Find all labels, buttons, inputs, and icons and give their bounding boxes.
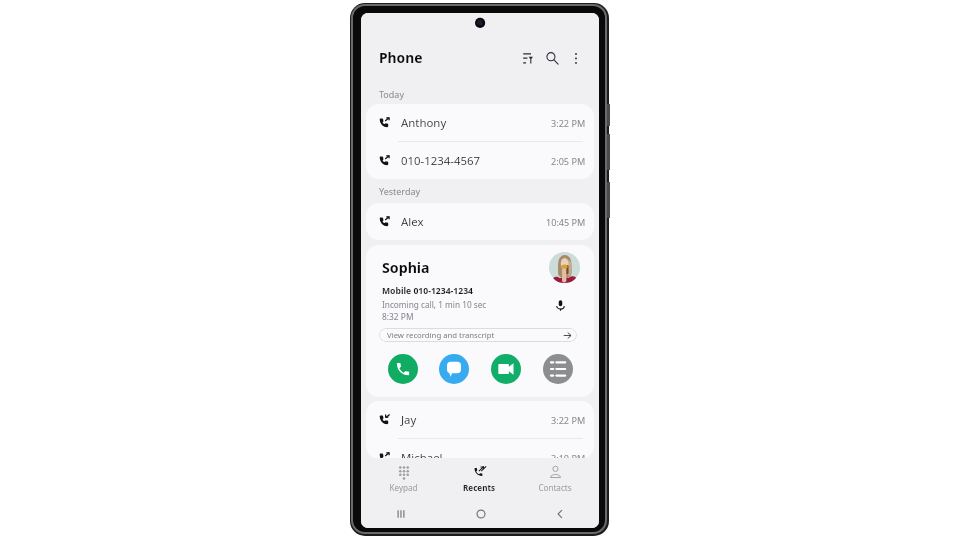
button[interactable]: Jay [366,401,594,438]
button[interactable]: Back [520,500,599,528]
button[interactable]: Search [542,48,562,68]
button[interactable]: Anthony [366,104,594,141]
button[interactable]: Sort [518,48,538,68]
staticText: Mobile 010-1234-1234 [382,285,473,297]
staticText: 8:32 PM [382,311,414,322]
staticText: Keypad [389,482,418,493]
staticText: Jay [401,412,417,428]
button[interactable]: Video call [491,354,521,384]
staticText: 010-1234-4567 [401,153,481,169]
button[interactable]: Recents [446,458,512,500]
staticText: Contacts [538,482,572,493]
button[interactable]: Home [441,500,520,528]
button[interactable]: Recent apps [361,500,441,528]
button[interactable]: Alex [366,203,594,240]
button[interactable]: Play voice recording [550,295,570,315]
button[interactable]: Call [388,354,418,384]
staticText: Today [379,88,404,100]
staticText: Sophia [382,258,430,277]
staticText: Recents [463,482,495,493]
staticText: 2:05 PM [551,155,586,167]
button[interactable]: Keypad [371,458,437,500]
staticText: Michael [401,450,443,459]
button[interactable]: Message [439,354,469,384]
staticText: Anthony [401,115,447,131]
staticText: 10:45 PM [546,216,586,228]
button[interactable]: Contacts [522,458,588,500]
staticText: Yesterday [379,185,421,197]
staticText: Alex [401,214,424,230]
staticText: Phone [379,48,423,67]
staticText: View recording and transcript [387,330,495,341]
staticText: 3:22 PM [551,414,586,426]
button[interactable]: View recording and transcript [379,328,577,342]
staticText: 3:22 PM [551,117,586,129]
button[interactable]: 010-1234-4567 [366,142,594,179]
button[interactable]: Michael [366,439,594,459]
staticText: Incoming call, 1 min 10 sec [382,299,487,310]
staticText: 3:10 PM [551,452,586,459]
button[interactable]: Call details [543,354,573,384]
button[interactable]: More options [566,48,586,68]
